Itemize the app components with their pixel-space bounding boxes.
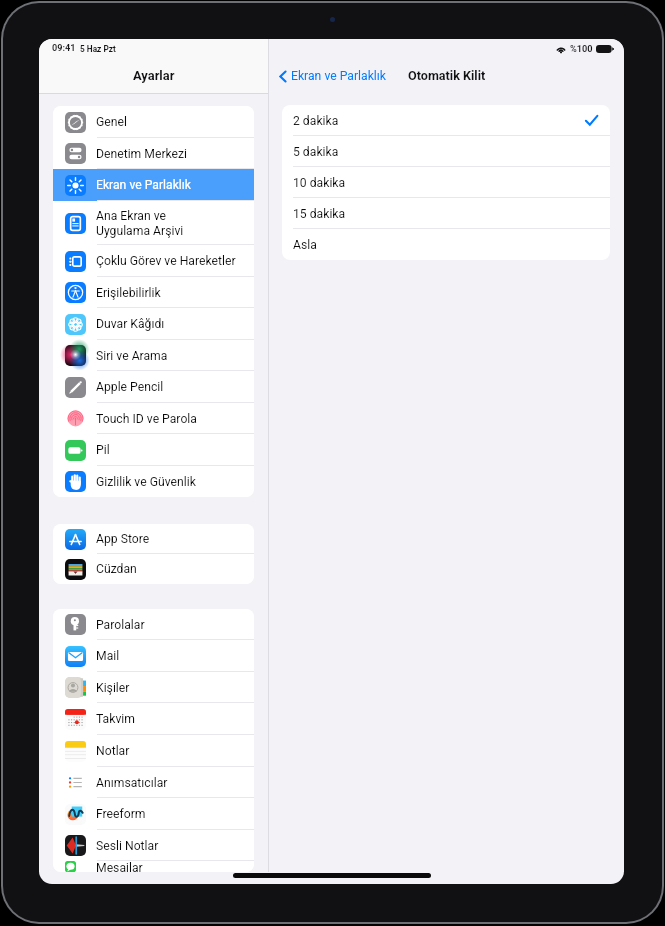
staticText: Mesajlar [96,861,143,872]
button[interactable]: Sesli Notlar [53,830,254,861]
button[interactable]: Denetim Merkezi [53,138,254,169]
staticText: Ekran ve Parlaklık [96,178,192,192]
staticText: Otomatik Kilit [408,68,486,83]
button[interactable]: Apple Pencil [53,371,254,403]
button[interactable]: Kişiler [53,672,254,703]
button[interactable]: Erişilebilirlik [53,277,254,308]
button[interactable]: 10 dakika [282,167,610,198]
button[interactable]: Siri ve Arama [53,340,254,371]
staticText: Duvar Kâğıdı [96,317,165,331]
staticText: Mail [96,649,120,663]
staticText: 15 dakika [293,207,346,221]
staticText: Sesli Notlar [96,839,159,853]
button[interactable]: Cüzdan [53,554,254,584]
staticText: Freeform [96,807,146,821]
button[interactable]: Notlar [53,735,254,767]
button[interactable]: Touch ID ve Parola [53,403,254,434]
staticText: Genel [96,115,127,129]
staticText: Touch ID ve Parola [96,412,197,426]
staticText: Gizlilik ve Güvenlik [96,475,196,489]
staticText: 5 Haz Pzt [80,44,116,54]
staticText: 09:41 [52,43,76,54]
button[interactable]: Anımsatıcılar [53,767,254,798]
button[interactable]: Duvar Kâğıdı [53,308,254,340]
staticText: Anımsatıcılar [96,776,168,790]
staticText: Cüzdan [96,562,137,576]
button[interactable]: Mesajlar [53,861,254,872]
button[interactable]: Takvim [53,703,254,735]
button[interactable]: Ekran ve Parlaklık [279,69,387,83]
staticText: Denetim Merkezi [96,147,188,161]
button[interactable]: 15 dakika [282,198,610,229]
staticText: %100 [570,43,593,54]
staticText: 5 dakika [293,145,339,159]
button[interactable]: Ekran ve Parlaklık [53,169,254,201]
staticText: Ayarlar [133,68,175,83]
staticText: Notlar [96,744,130,758]
button[interactable]: Mail [53,640,254,672]
button[interactable]: Pil [53,434,254,466]
staticText: Çoklu Görev ve Hareketler [96,254,236,268]
staticText: Uygulama Arşivi [96,224,184,238]
button[interactable]: Ana Ekran ve [53,201,254,245]
button[interactable]: Çoklu Görev ve Hareketler [53,245,254,277]
staticText: Siri ve Arama [96,349,168,363]
staticText: Ana Ekran ve [96,209,167,223]
staticText: Erişilebilirlik [96,286,161,300]
button[interactable]: Freeform [53,798,254,830]
staticText: Asla [293,238,317,252]
staticText: 2 dakika [293,114,339,128]
staticText: Kişiler [96,681,130,695]
staticText: Ekran ve Parlaklık [291,69,387,83]
button[interactable]: 2 dakika [282,105,610,136]
button[interactable]: App Store [53,524,254,554]
staticText: Parolalar [96,618,145,632]
staticText: Pil [96,443,110,457]
staticText: Apple Pencil [96,380,164,394]
staticText: Takvim [96,712,135,726]
button[interactable]: Gizlilik ve Güvenlik [53,466,254,497]
staticText: App Store [96,532,150,546]
button[interactable]: Parolalar [53,609,254,640]
button[interactable]: Genel [53,106,254,138]
staticText: 10 dakika [293,176,346,190]
button[interactable]: Asla [282,229,610,260]
button[interactable]: 5 dakika [282,136,610,167]
